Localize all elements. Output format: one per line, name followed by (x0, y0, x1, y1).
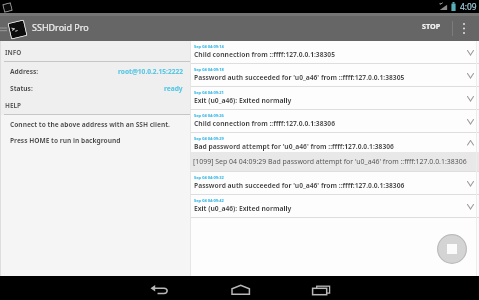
button[interactable]: Home (229, 281, 253, 297)
staticText: Sep 04 04:09:26 (194, 113, 224, 118)
button[interactable]: Sep 04 04:09:14 (191, 41, 479, 64)
staticText: Sep 04 04:09:29 (194, 136, 224, 141)
staticText: STOP (422, 21, 441, 31)
staticText: Sep 04 04:09:14 (194, 44, 224, 49)
staticText: Password auth succeeded for 'u0_a46' fro… (194, 181, 405, 190)
button[interactable]: Sep 04 04:09:26 (191, 110, 479, 133)
staticText: >_ (11, 24, 18, 32)
staticText: Password auth succeeded for 'u0_a46' fro… (194, 73, 405, 82)
staticText: Sep 04 04:09:21 (194, 90, 224, 95)
button[interactable]: STOP (411, 16, 452, 41)
button[interactable]: Up (0, 16, 28, 41)
staticText: Exit (u0_a46): Exited normally (194, 96, 292, 105)
staticText: Sep 04 04:09:32 (194, 175, 224, 180)
staticText: Address: (10, 67, 39, 76)
button[interactable]: Address: (0, 62, 190, 80)
staticText: Bad password attempt for 'u0_a46' from :… (194, 142, 394, 151)
staticText: Press HOME to run in background (10, 136, 121, 145)
button[interactable]: Recent apps (310, 281, 334, 297)
staticText: Child connection from ::ffff:127.0.0.1:3… (194, 50, 335, 59)
staticText: INFO (5, 48, 22, 57)
button[interactable]: Sep 04 04:09:42 (191, 195, 479, 218)
staticText: SSHDroid Pro (32, 21, 89, 33)
staticText: Connect to the above address with an SSH… (10, 120, 170, 129)
button[interactable]: Sep 04 04:09:32 (191, 172, 479, 195)
button[interactable]: Sep 04 04:09:21 (191, 87, 479, 110)
button[interactable]: More options (453, 16, 474, 41)
staticText: HELP (5, 101, 22, 110)
button[interactable]: Sep 04 04:09:18 (191, 64, 479, 87)
button[interactable]: Stop server (437, 234, 467, 264)
staticText: Child connection from ::ffff:127.0.0.1:3… (194, 119, 335, 128)
staticText: ready (164, 84, 183, 93)
staticText: [1099] Sep 04 04:09:29 Bad password atte… (193, 157, 467, 166)
staticText: Status: (10, 84, 33, 93)
button[interactable]: Sep 04 04:09:29 (191, 133, 479, 172)
staticText: root@10.0.2.15:2222 (118, 67, 183, 76)
button[interactable]: Back (148, 281, 172, 297)
staticText: 4:09 (460, 1, 477, 12)
staticText: Exit (u0_a46): Exited normally (194, 204, 292, 213)
staticText: Sep 04 04:09:18 (194, 67, 224, 72)
staticText: Sep 04 04:09:42 (194, 198, 224, 203)
button[interactable]: Status: (0, 80, 190, 97)
